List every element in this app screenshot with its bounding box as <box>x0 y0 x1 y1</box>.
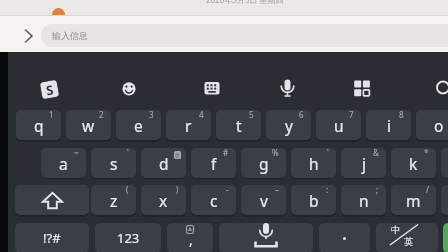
staticText: o <box>434 115 444 136</box>
staticText: ( <box>126 185 129 195</box>
staticText: 英 <box>404 236 413 247</box>
button[interactable]: u <box>316 110 361 140</box>
button[interactable]: z <box>91 185 136 215</box>
staticText: t <box>236 115 242 136</box>
staticText: / <box>426 185 429 195</box>
button[interactable]: a <box>41 148 86 178</box>
button[interactable]: k <box>391 148 436 178</box>
button[interactable]: 中 <box>376 223 438 252</box>
staticText: : <box>326 185 329 195</box>
staticText: s <box>110 153 118 174</box>
staticText: ' <box>327 148 329 158</box>
button[interactable]: i <box>366 110 411 140</box>
staticText: m <box>406 190 421 211</box>
button[interactable] <box>348 74 376 102</box>
staticText: b <box>309 190 319 211</box>
staticText: ~ <box>74 148 79 158</box>
button[interactable] <box>273 74 301 102</box>
button[interactable]: n <box>341 185 386 215</box>
button[interactable] <box>198 74 226 102</box>
staticText: 输入信息 <box>52 30 88 41</box>
staticText: 5 <box>249 110 254 120</box>
button[interactable] <box>443 223 448 252</box>
button[interactable] <box>429 74 448 102</box>
button[interactable]: m <box>391 185 436 215</box>
staticText: r <box>185 115 192 136</box>
staticText: , <box>189 230 193 249</box>
button[interactable]: , <box>167 223 213 252</box>
staticText: n <box>359 190 369 211</box>
staticText: 8 <box>399 110 404 120</box>
button[interactable]: g <box>241 148 286 178</box>
button[interactable]: 输入信息 <box>41 24 448 47</box>
staticText: j <box>362 153 366 174</box>
staticText: * <box>424 148 429 158</box>
staticText: ) <box>176 185 179 195</box>
staticText: g <box>259 153 269 174</box>
button[interactable]: e <box>116 110 161 140</box>
staticText: y <box>285 115 293 136</box>
button[interactable] <box>319 223 370 252</box>
staticText: 1 <box>49 110 54 120</box>
staticText: & <box>373 148 379 158</box>
staticText: - <box>226 185 229 195</box>
button[interactable]: f <box>191 148 236 178</box>
staticText: e <box>134 115 143 136</box>
staticText: a <box>59 153 68 174</box>
button[interactable] <box>15 185 89 215</box>
button[interactable]: v <box>241 185 286 215</box>
button[interactable]: q <box>16 110 61 140</box>
staticText: 7 <box>349 110 354 120</box>
button[interactable]: h <box>291 148 336 178</box>
staticText: w <box>82 115 95 136</box>
button[interactable]: y <box>266 110 311 140</box>
staticText: S <box>45 80 55 98</box>
staticText: !?# <box>43 229 61 247</box>
button[interactable]: o <box>416 110 448 140</box>
button[interactable] <box>441 185 448 215</box>
staticText: % <box>272 148 279 158</box>
staticText: f <box>211 153 217 174</box>
staticText: x <box>159 190 168 211</box>
staticText: – <box>275 185 279 195</box>
button[interactable]: t <box>216 110 261 140</box>
button[interactable]: x <box>141 185 186 215</box>
staticText: 2 <box>99 110 104 120</box>
staticText: u <box>334 115 344 136</box>
button[interactable]: r <box>166 110 211 140</box>
staticText: h <box>309 153 319 174</box>
button[interactable]: b <box>291 185 336 215</box>
staticText: # <box>223 148 229 158</box>
staticText: 4 <box>199 110 204 120</box>
button[interactable]: d <box>141 148 186 178</box>
staticText: z <box>110 190 118 211</box>
button[interactable] <box>441 148 448 178</box>
button[interactable]: 123 <box>95 223 161 252</box>
staticText: 3 <box>149 110 154 120</box>
button[interactable]: c <box>191 185 236 215</box>
staticText: @ <box>175 152 180 159</box>
staticText: 2020年3月5日 星期四 <box>206 0 284 5</box>
staticText: ' <box>127 148 129 158</box>
staticText: 6 <box>299 110 304 120</box>
staticText: i <box>387 115 391 136</box>
staticText: c <box>210 190 218 211</box>
button[interactable] <box>16 25 38 47</box>
button[interactable]: S <box>34 74 64 104</box>
button[interactable] <box>115 74 143 102</box>
button[interactable]: j <box>341 148 386 178</box>
button[interactable]: s <box>91 148 136 178</box>
staticText: d <box>159 153 169 174</box>
staticText: q <box>34 115 44 136</box>
staticText: k <box>409 153 418 174</box>
staticText: 中 <box>391 224 400 235</box>
staticText: ; <box>376 185 379 195</box>
staticText: 123 <box>117 229 140 247</box>
button[interactable]: w <box>66 110 111 140</box>
button[interactable] <box>219 223 313 252</box>
button[interactable]: !?# <box>15 223 89 252</box>
staticText: v <box>260 190 268 211</box>
